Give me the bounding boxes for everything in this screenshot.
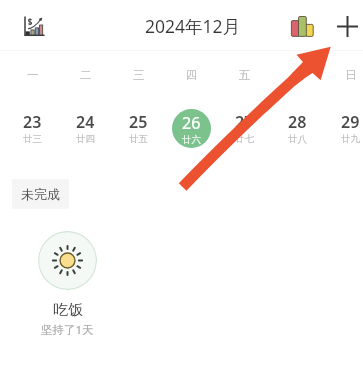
staticText: 五 <box>239 68 251 82</box>
staticText: 日 <box>345 68 357 82</box>
staticText: 25 <box>129 111 148 133</box>
button[interactable]: 23 <box>6 108 59 148</box>
staticText: 廿五 <box>129 133 148 145</box>
staticText: 2024年12月 <box>145 14 241 38</box>
button[interactable]: 24 <box>59 108 112 148</box>
button[interactable]: Statistics chart <box>285 11 319 41</box>
staticText: 三 <box>133 68 145 82</box>
staticText: 四 <box>186 68 198 82</box>
button[interactable]: 25 <box>112 108 165 148</box>
button[interactable]: 26 <box>172 109 211 148</box>
staticText: 廿六 <box>182 134 201 146</box>
button[interactable]: 29 <box>324 108 363 148</box>
staticText: 廿九 <box>341 133 360 145</box>
staticText: 23 <box>23 111 42 133</box>
button[interactable]: Statistics <box>17 9 52 44</box>
staticText: 廿四 <box>76 133 95 145</box>
button[interactable]: 吃饭 <box>12 225 123 345</box>
staticText: 坚持了1天 <box>41 322 94 336</box>
button[interactable]: 27 <box>218 108 271 148</box>
button[interactable]: 28 <box>271 108 324 148</box>
staticText: 一 <box>27 68 39 82</box>
staticText: 26 <box>182 112 201 134</box>
staticText: 24 <box>76 111 95 133</box>
staticText: 未完成 <box>21 186 60 202</box>
staticText: 六 <box>292 68 304 82</box>
staticText: 29 <box>341 111 360 133</box>
staticText: 廿三 <box>23 133 42 145</box>
staticText: 廿七 <box>235 133 254 145</box>
staticText: 二 <box>80 68 92 82</box>
staticText: 27 <box>235 111 254 133</box>
staticText: 廿八 <box>288 133 307 145</box>
staticText: 28 <box>288 111 307 133</box>
staticText: 吃饭 <box>53 301 83 319</box>
button[interactable]: 未完成 <box>12 179 69 209</box>
button[interactable]: Add habit <box>331 10 363 43</box>
